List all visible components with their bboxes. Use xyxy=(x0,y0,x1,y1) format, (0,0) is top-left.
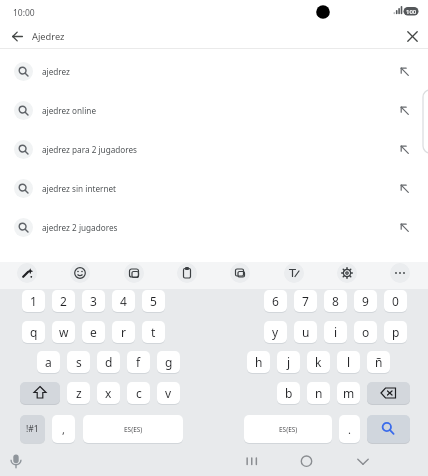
button[interactable]: t xyxy=(142,321,165,343)
staticText: b xyxy=(285,385,293,401)
staticText: j xyxy=(287,354,291,370)
button[interactable]: v xyxy=(157,382,180,404)
staticText: u xyxy=(302,324,310,340)
staticText: 1 xyxy=(30,293,37,309)
button[interactable]: ajedrez sin internet xyxy=(0,169,428,208)
button[interactable] xyxy=(177,263,197,283)
button[interactable]: h xyxy=(247,351,270,373)
staticText: e xyxy=(90,324,97,340)
button[interactable]: ajedrez xyxy=(0,52,428,91)
staticText: y xyxy=(272,324,279,340)
button[interactable]: b xyxy=(277,382,300,404)
staticText: 5 xyxy=(150,293,157,309)
button[interactable]: r xyxy=(112,321,135,343)
button[interactable] xyxy=(337,263,357,283)
staticText: 7 xyxy=(302,293,309,309)
button[interactable]: a xyxy=(37,351,60,373)
staticText: m xyxy=(343,385,355,401)
button[interactable]: y xyxy=(264,321,287,343)
button[interactable] xyxy=(352,452,374,470)
button[interactable] xyxy=(284,263,304,283)
button[interactable]: ES(ES) xyxy=(244,415,332,443)
button[interactable]: ajedrez para 2 jugadores xyxy=(0,130,428,169)
button[interactable]: j xyxy=(277,351,300,373)
button[interactable]: 6 xyxy=(264,290,287,312)
staticText: 100 xyxy=(406,8,417,16)
button[interactable] xyxy=(367,415,410,443)
button[interactable]: x xyxy=(97,382,120,404)
button[interactable] xyxy=(17,263,37,283)
button[interactable]: , xyxy=(52,415,75,443)
staticText: x xyxy=(105,385,112,401)
button[interactable]: i xyxy=(324,321,347,343)
staticText: !#1 xyxy=(26,423,39,435)
button[interactable]: 5 xyxy=(142,290,165,312)
button[interactable]: ES(ES) xyxy=(83,415,183,443)
button[interactable]: !#1 xyxy=(20,415,45,443)
button[interactable] xyxy=(240,452,262,470)
staticText: s xyxy=(76,354,82,370)
staticText: Ajedrez xyxy=(32,30,65,43)
button[interactable]: d xyxy=(97,351,120,373)
button[interactable] xyxy=(6,25,28,47)
button[interactable]: 8 xyxy=(324,290,347,312)
button[interactable]: 4 xyxy=(112,290,135,312)
button[interactable] xyxy=(401,25,423,47)
button[interactable]: o xyxy=(354,321,377,343)
button[interactable]: c xyxy=(127,382,150,404)
staticText: f xyxy=(136,354,141,370)
staticText: t xyxy=(151,324,156,340)
staticText: ajedrez xyxy=(42,66,70,77)
button[interactable]: 1 xyxy=(22,290,45,312)
staticText: h xyxy=(255,354,263,370)
button[interactable] xyxy=(230,263,250,283)
button[interactable]: p xyxy=(384,321,407,343)
button[interactable] xyxy=(367,382,410,404)
button[interactable] xyxy=(390,263,410,283)
staticText: r xyxy=(121,324,126,340)
button[interactable]: u xyxy=(294,321,317,343)
button[interactable]: ajedrez online xyxy=(0,91,428,130)
staticText: 0 xyxy=(392,293,399,309)
staticText: c xyxy=(136,385,142,401)
button[interactable]: z xyxy=(67,382,90,404)
button[interactable]: g xyxy=(157,351,180,373)
button[interactable] xyxy=(70,263,90,283)
button[interactable] xyxy=(124,263,144,283)
staticText: n xyxy=(315,385,323,401)
staticText: ajedrez 2 jugadores xyxy=(42,222,118,233)
button[interactable]: 7 xyxy=(294,290,317,312)
button[interactable]: . xyxy=(339,415,360,443)
staticText: . xyxy=(348,422,351,437)
staticText: ñ xyxy=(375,354,383,370)
button[interactable]: k xyxy=(307,351,330,373)
button[interactable]: ajedrez 2 jugadores xyxy=(0,208,428,247)
staticText: ajedrez sin internet xyxy=(42,183,117,194)
staticText: ajedrez para 2 jugadores xyxy=(42,144,138,155)
staticText: i xyxy=(334,324,338,340)
button[interactable]: 0 xyxy=(384,290,407,312)
staticText: 9 xyxy=(362,293,369,309)
staticText: 8 xyxy=(332,293,339,309)
staticText: ES(ES) xyxy=(279,425,298,434)
button[interactable]: f xyxy=(127,351,150,373)
button[interactable]: n xyxy=(307,382,330,404)
button[interactable]: m xyxy=(337,382,360,404)
button[interactable]: q xyxy=(22,321,45,343)
button[interactable]: 3 xyxy=(82,290,105,312)
staticText: d xyxy=(105,354,113,370)
button[interactable]: w xyxy=(52,321,75,343)
staticText: z xyxy=(76,385,82,401)
button[interactable] xyxy=(20,382,60,404)
button[interactable]: s xyxy=(67,351,90,373)
staticText: ajedrez online xyxy=(42,105,97,116)
staticText: , xyxy=(62,422,65,437)
button[interactable] xyxy=(295,452,317,470)
staticText: 10:00 xyxy=(13,7,35,19)
button[interactable]: ñ xyxy=(367,351,390,373)
button[interactable]: 9 xyxy=(354,290,377,312)
staticText: g xyxy=(165,354,173,370)
button[interactable]: l xyxy=(337,351,360,373)
button[interactable]: 2 xyxy=(52,290,75,312)
button[interactable]: e xyxy=(82,321,105,343)
